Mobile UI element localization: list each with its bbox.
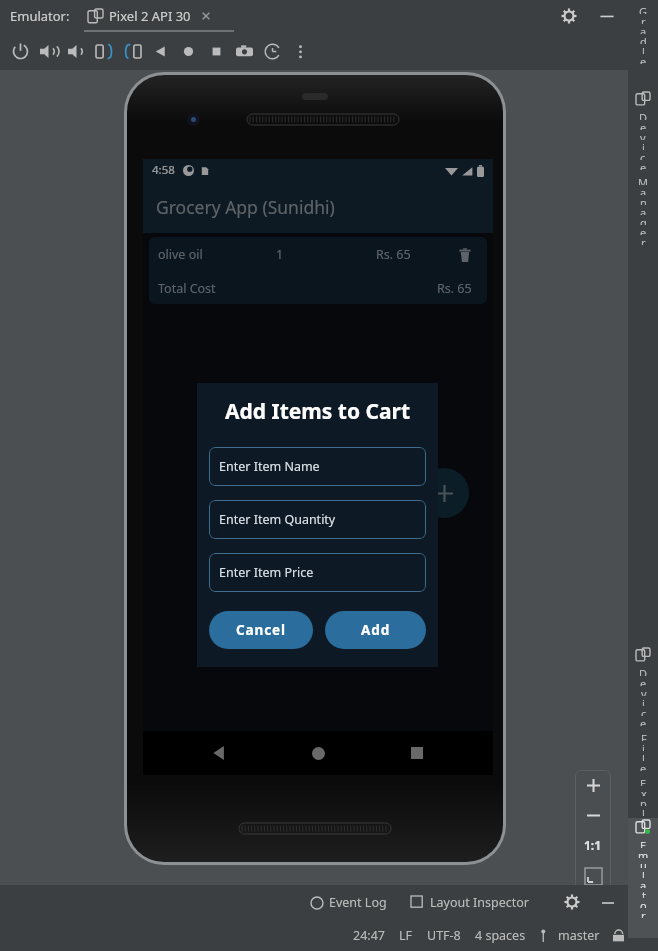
button[interactable]: History <box>258 37 286 65</box>
button[interactable]: Delete item <box>452 242 478 268</box>
staticText: 4 spaces <box>475 927 526 944</box>
staticText: t <box>642 888 646 898</box>
button[interactable]: Rotate right <box>118 37 146 65</box>
staticText: v <box>641 686 647 696</box>
staticText: r <box>641 235 646 245</box>
staticText: master <box>558 927 600 944</box>
staticText: Add Items to Cart <box>225 397 411 426</box>
button[interactable]: Cancel <box>209 611 313 649</box>
staticText: Enter Item Price <box>219 564 314 581</box>
button[interactable]: Layout Inspector <box>411 894 529 911</box>
staticText: Rs. 65 <box>376 246 452 263</box>
button[interactable]: Enter Item Quantity <box>209 500 426 539</box>
button[interactable]: Back <box>146 37 174 65</box>
staticText: LF <box>399 927 413 944</box>
staticText: 1 <box>276 246 376 263</box>
staticText: E <box>640 776 647 786</box>
button[interactable]: Volume up <box>34 37 62 65</box>
button[interactable]: olive oil <box>149 237 487 304</box>
button[interactable]: Home <box>295 731 341 775</box>
staticText: e <box>640 761 647 771</box>
staticText: l <box>642 806 645 816</box>
staticText: c <box>640 150 646 160</box>
button[interactable]: Rotate left <box>90 37 118 65</box>
button[interactable]: Zoom out <box>575 800 611 830</box>
button[interactable]: More <box>286 37 314 65</box>
staticText: e <box>640 54 647 64</box>
staticText: r <box>641 908 646 918</box>
staticText: 4:58 <box>152 162 175 178</box>
staticText: c <box>641 706 647 716</box>
button[interactable]: Minimize <box>596 5 618 27</box>
button[interactable]: Back <box>196 731 242 775</box>
button[interactable]: Hide <box>598 892 618 912</box>
button[interactable]: Settings <box>562 892 582 912</box>
button[interactable]: Close tab <box>199 9 213 23</box>
staticText: i <box>642 140 645 150</box>
staticText: 24:47 <box>353 927 385 944</box>
staticText: i <box>642 741 645 751</box>
staticText: u <box>640 858 647 868</box>
staticText: e <box>640 120 647 130</box>
button[interactable]: 1:1 <box>575 830 611 860</box>
staticText: Enter Item Name <box>219 458 320 475</box>
staticText: 1:1 <box>584 837 602 853</box>
staticText: o <box>640 898 647 908</box>
button[interactable]: Home <box>174 37 202 65</box>
staticText: D <box>639 110 648 120</box>
staticText: m <box>638 848 649 858</box>
staticText: olive oil <box>158 246 276 263</box>
staticText: Layout Inspector <box>430 894 529 911</box>
staticText: r <box>641 826 646 836</box>
staticText: Grocery App (Sunidhi) <box>156 195 335 219</box>
button[interactable]: Power <box>6 37 34 65</box>
button[interactable]: Overview <box>202 37 230 65</box>
staticText: UTF-8 <box>427 927 461 944</box>
staticText: e <box>640 836 647 846</box>
button[interactable]: Enter Item Name <box>209 447 426 486</box>
staticText: e <box>640 160 647 170</box>
button[interactable]: E <box>628 820 658 918</box>
staticText: d <box>640 34 647 44</box>
staticText: l <box>642 44 645 54</box>
button[interactable]: G <box>628 4 658 64</box>
staticText: e <box>640 225 647 235</box>
button[interactable]: Enter Item Price <box>209 553 426 592</box>
button[interactable]: Screenshot <box>230 37 258 65</box>
button[interactable]: Settings <box>558 5 580 27</box>
staticText: Pixel 2 API 30 <box>109 7 191 25</box>
staticText: Cancel <box>236 621 286 639</box>
button[interactable]: Add item <box>419 468 469 518</box>
button[interactable]: Recent apps <box>394 731 440 775</box>
staticText: Add <box>361 621 391 639</box>
button[interactable]: Zoom in <box>575 770 611 800</box>
staticText: E <box>640 838 647 848</box>
staticText: p <box>640 796 647 806</box>
staticText: x <box>641 786 647 796</box>
button[interactable]: D <box>628 92 658 245</box>
button[interactable]: Volume down <box>62 37 90 65</box>
staticText: l <box>642 868 645 878</box>
staticText: Rs. 65 <box>437 280 472 297</box>
staticText: i <box>642 696 645 706</box>
button[interactable]: Add <box>325 611 426 649</box>
button[interactable]: Event Log <box>310 894 387 911</box>
staticText: r <box>641 14 646 24</box>
button[interactable]: Fit to screen <box>575 860 611 892</box>
staticText: l <box>642 751 645 761</box>
staticText: v <box>640 130 646 140</box>
staticText: e <box>640 676 647 686</box>
staticText: G <box>639 4 648 14</box>
staticText: o <box>640 816 647 826</box>
staticText: D <box>639 666 648 676</box>
staticText: Enter Item Quantity <box>219 511 336 528</box>
staticText: Event Log <box>329 894 387 911</box>
staticText: n <box>640 195 647 205</box>
button[interactable]: D <box>628 648 658 856</box>
staticText: e <box>640 716 647 726</box>
staticText: a <box>640 878 647 888</box>
staticText: M <box>638 175 648 185</box>
staticText: a <box>640 24 647 34</box>
staticText: r <box>641 846 646 856</box>
staticText: F <box>641 731 647 741</box>
